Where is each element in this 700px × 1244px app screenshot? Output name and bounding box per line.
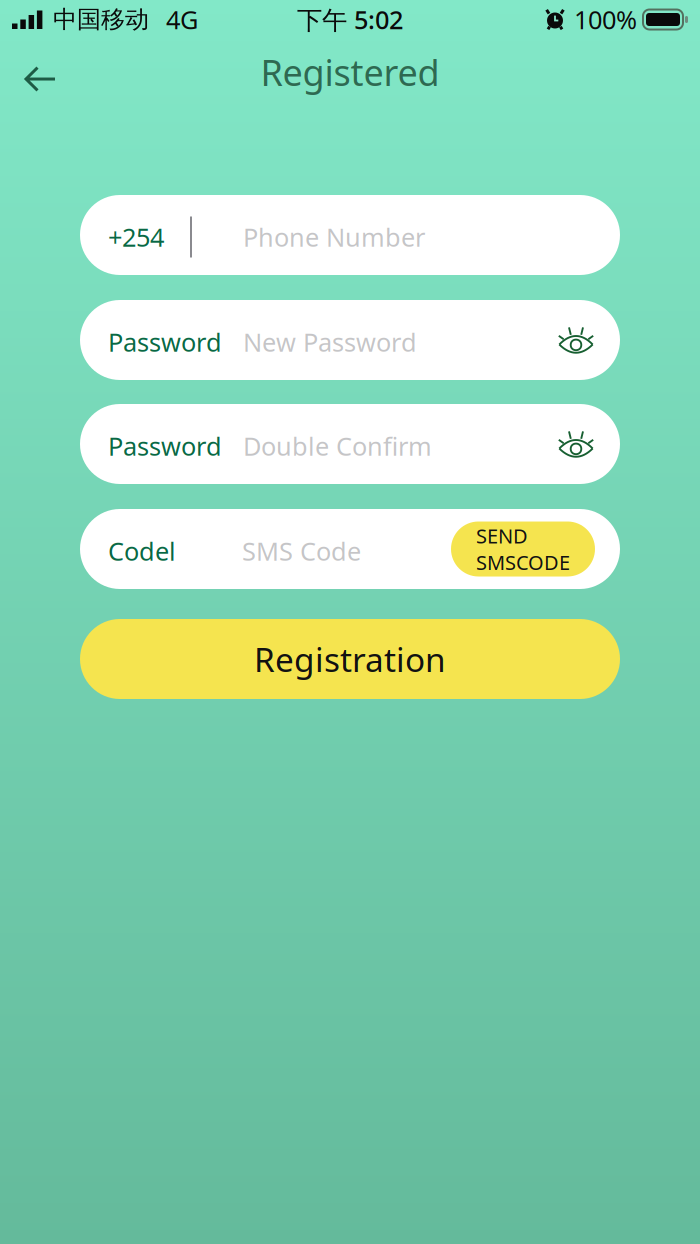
staticText: Double Confirm	[243, 429, 432, 463]
staticText: Password	[108, 325, 222, 359]
button[interactable]: Show confirm password	[536, 409, 620, 479]
staticText: 100%	[574, 3, 637, 36]
button[interactable]: Registration	[80, 619, 620, 699]
button[interactable]: SEND SMSCODE	[451, 521, 595, 576]
button[interactable]: Back	[0, 48, 77, 102]
staticText: +254	[108, 220, 164, 254]
staticText: Codel	[108, 534, 176, 568]
staticText: SMS Code	[242, 534, 361, 568]
staticText: 中国移动	[53, 5, 149, 34]
staticText: SEND SMSCODE	[476, 522, 570, 575]
staticText: 4G	[166, 3, 198, 36]
staticText: New Password	[243, 325, 417, 359]
staticText: Registration	[254, 637, 446, 681]
staticText: 下午 5:02	[297, 3, 403, 36]
staticText: Password	[108, 429, 222, 463]
staticText: Phone Number	[243, 220, 425, 254]
staticText: Registered	[260, 48, 439, 96]
button[interactable]: Show password	[536, 305, 620, 375]
